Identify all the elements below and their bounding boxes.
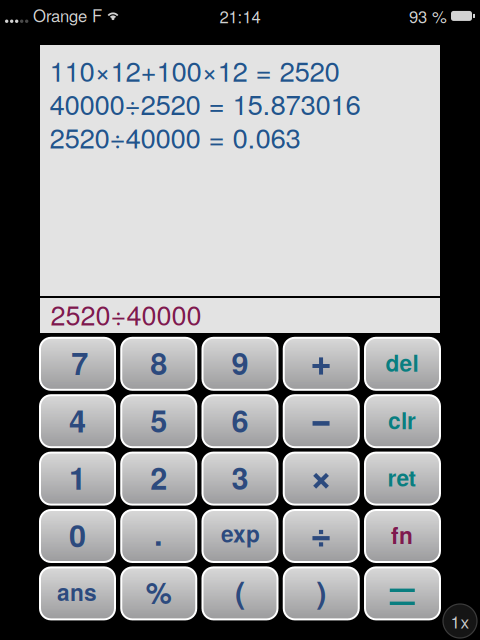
- button[interactable]: 0: [40, 510, 115, 562]
- button[interactable]: 6: [202, 395, 277, 447]
- staticText: 21:14: [219, 4, 260, 28]
- button[interactable]: 5: [121, 395, 196, 447]
- staticText: 5: [150, 398, 167, 442]
- button[interactable]: clr: [365, 395, 440, 447]
- staticText: (: [235, 569, 245, 613]
- button[interactable]: Zoom 1x: [443, 604, 477, 638]
- button[interactable]: .: [121, 510, 196, 562]
- button[interactable]: 4: [40, 395, 115, 447]
- button[interactable]: Minus: [284, 395, 359, 447]
- button[interactable]: Plus: [284, 338, 359, 390]
- staticText: 0: [69, 513, 86, 557]
- staticText: 6: [231, 398, 248, 442]
- button[interactable]: Divide: [284, 510, 359, 562]
- button[interactable]: 7: [40, 338, 115, 390]
- button[interactable]: 9: [202, 338, 277, 390]
- button[interactable]: fn: [365, 510, 440, 562]
- staticText: ret: [387, 461, 416, 494]
- staticText: 1: [69, 455, 86, 499]
- staticText: ): [316, 569, 326, 613]
- staticText: 1x: [450, 609, 469, 633]
- staticText: fn: [391, 518, 413, 551]
- staticText: del: [385, 346, 418, 379]
- button[interactable]: ret: [365, 453, 440, 505]
- button[interactable]: ans: [40, 567, 115, 619]
- button[interactable]: Multiply: [284, 453, 359, 505]
- staticText: 9: [231, 340, 248, 384]
- staticText: .: [154, 511, 163, 555]
- button[interactable]: 8: [121, 338, 196, 390]
- button[interactable]: 2: [121, 453, 196, 505]
- staticText: clr: [388, 404, 416, 436]
- button[interactable]: (: [202, 567, 277, 619]
- staticText: 8: [150, 340, 167, 384]
- button[interactable]: 1: [40, 453, 115, 505]
- staticText: 93 %: [409, 4, 447, 28]
- button[interactable]: ): [284, 567, 359, 619]
- staticText: ans: [57, 576, 97, 608]
- staticText: 2520÷40000 = 0.063: [49, 117, 300, 156]
- staticText: 2: [150, 455, 167, 499]
- button[interactable]: exp: [202, 510, 277, 562]
- staticText: %: [146, 571, 172, 613]
- button[interactable]: del: [365, 338, 440, 390]
- staticText: 2520÷40000: [50, 294, 201, 333]
- button[interactable]: Equals: [365, 567, 440, 619]
- staticText: exp: [221, 517, 260, 549]
- button[interactable]: %: [121, 567, 196, 619]
- staticText: 110×12+100×12 = 2520: [49, 50, 339, 89]
- staticText: 7: [71, 340, 88, 384]
- button[interactable]: 3: [202, 453, 277, 505]
- staticText: 40000÷2520 = 15.873016: [49, 83, 360, 123]
- staticText: 3: [231, 455, 248, 499]
- staticText: Orange F: [33, 3, 102, 27]
- staticText: 4: [69, 398, 86, 442]
